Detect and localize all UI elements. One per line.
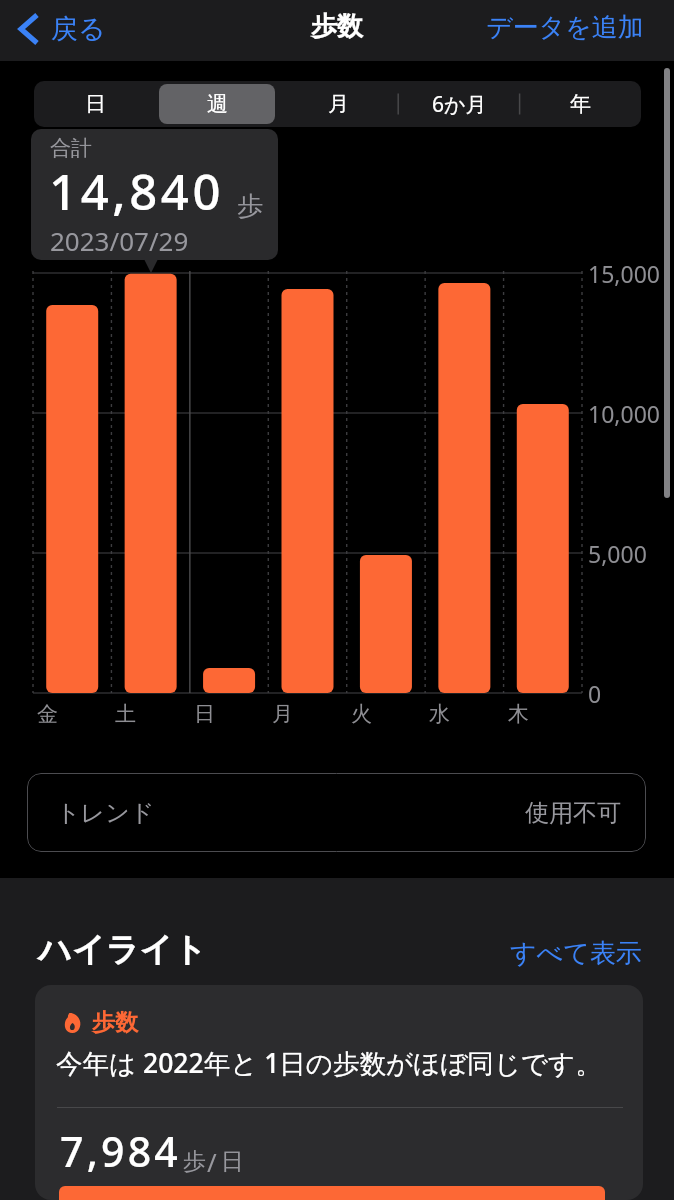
staticText: 日 [221,1147,244,1176]
staticText: 15,000 [588,258,660,289]
staticText: 月 [328,91,349,117]
staticText: 使用不可 [525,798,621,828]
staticText: 今年は 2022年と 1日の歩数がほぼ同じです。 [56,1045,602,1081]
button[interactable]: 月 [281,84,396,124]
staticText: 金 [37,701,58,727]
button[interactable]: 歩数 [35,985,643,1200]
staticText: 水 [429,701,450,727]
staticText: 週 [207,91,228,117]
staticText: 6か月 [432,90,487,119]
staticText: ハイライト [38,929,207,971]
staticText: 合計 [50,135,92,161]
staticText: データを追加 [486,11,644,44]
staticText: 日 [194,701,215,727]
staticText: 日 [85,91,106,117]
staticText: 2023/07/29 [50,223,189,258]
button[interactable]: 年 [523,84,638,124]
staticText: 歩数 [92,1008,138,1037]
staticText: 火 [351,701,372,727]
staticText: 10,000 [588,398,660,429]
staticText: / [207,1144,217,1179]
button[interactable]: 戻る [0,6,120,56]
button[interactable]: すべて表示 [510,937,642,970]
staticText: 土 [115,701,136,727]
staticText: 5,000 [588,538,647,569]
button[interactable]: 日 [37,84,153,124]
button[interactable]: 6か月 [402,84,517,124]
staticText: 歩 [183,1147,206,1176]
staticText: 7,984 [60,1123,182,1179]
staticText: 戻る [51,12,106,46]
staticText: 年 [570,91,591,117]
staticText: 歩数 [311,10,363,43]
button[interactable]: データを追加 [470,5,674,56]
staticText: 木 [508,701,529,727]
staticText: 月 [272,701,293,727]
staticText: 14,840 [49,158,225,225]
button[interactable]: トレンド [27,773,646,852]
staticText: 0 [588,678,602,709]
staticText: トレンド [56,798,155,828]
staticText: 歩 [237,190,263,223]
staticText: すべて表示 [510,937,642,970]
button[interactable]: 週 [159,84,275,124]
